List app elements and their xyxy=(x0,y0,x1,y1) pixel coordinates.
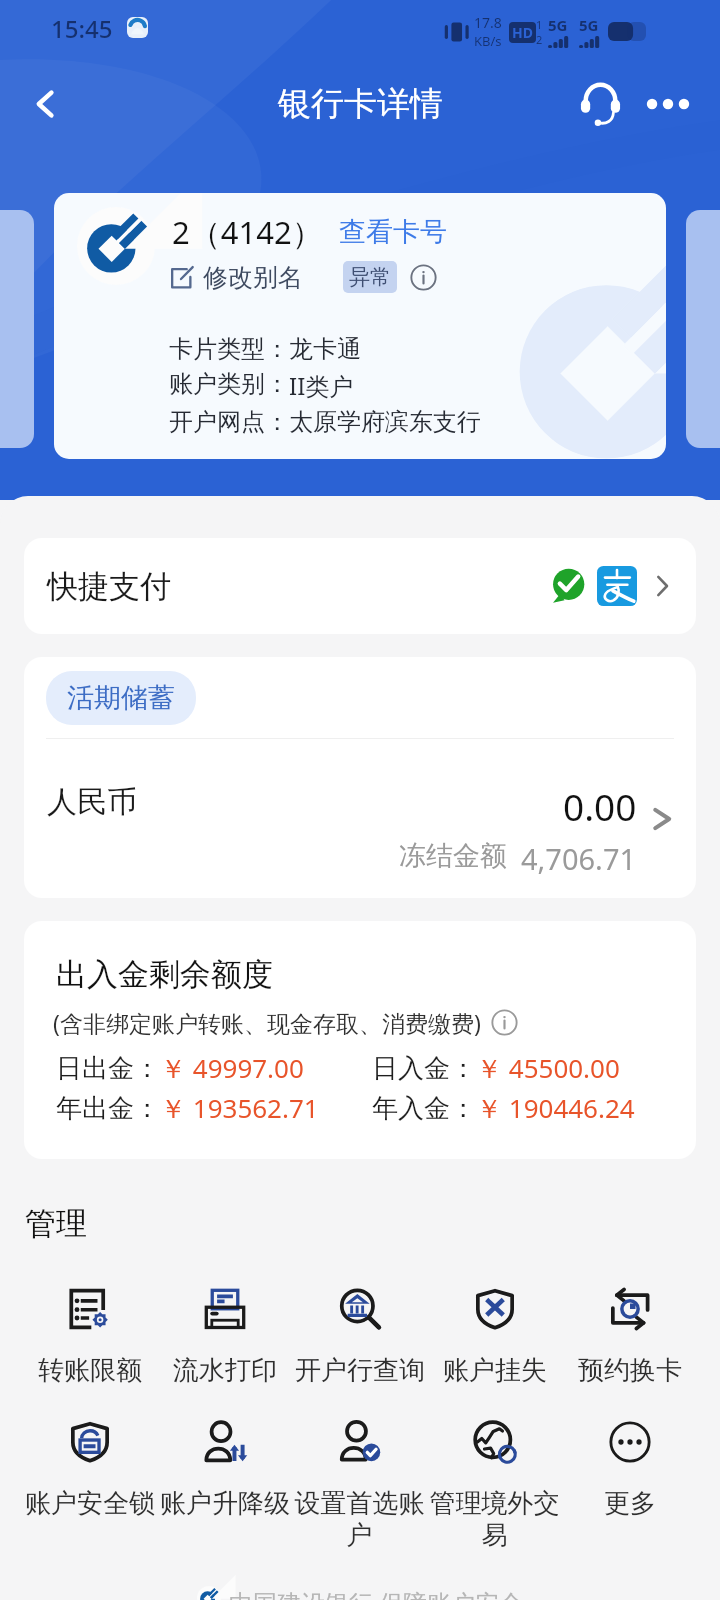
staticText: 账户升降级 xyxy=(160,1487,290,1520)
button[interactable]: 人民币 xyxy=(24,739,696,898)
staticText: 开户网点： xyxy=(169,407,289,437)
staticText: 管理境外交易 xyxy=(429,1487,560,1552)
staticText: ￥ 190446.24 xyxy=(476,1090,635,1126)
staticText: KB/s xyxy=(474,32,502,50)
staticText: 年出金： xyxy=(56,1092,160,1125)
staticText: 出入金剩余额度 xyxy=(56,955,273,994)
staticText: 活期储蓄 xyxy=(67,681,175,715)
button[interactable]: 预约换卡 xyxy=(562,1287,697,1387)
staticText: 转账限额 xyxy=(38,1354,142,1387)
button[interactable]: 管理境外交易 xyxy=(427,1420,562,1552)
staticText: 日入金： xyxy=(372,1052,476,1085)
staticText: 账户挂失 xyxy=(443,1354,547,1387)
staticText: 账户类别： xyxy=(169,369,289,399)
staticText: 1 xyxy=(536,17,543,32)
staticText: 更多 xyxy=(604,1487,656,1520)
staticText: 修改别名 xyxy=(203,262,303,293)
button[interactable]: 流水打印 xyxy=(157,1287,292,1387)
staticText: 银行卡详情 xyxy=(278,83,443,125)
button[interactable]: 账户挂失 xyxy=(427,1287,562,1387)
button[interactable]: 账户安全锁 xyxy=(23,1420,157,1520)
button[interactable]: 开户行查询 xyxy=(292,1287,427,1387)
button[interactable]: Customer service xyxy=(570,74,630,134)
staticText: II类户 xyxy=(289,369,354,402)
staticText: 0.00 xyxy=(563,781,637,831)
staticText: 流水打印 xyxy=(173,1354,277,1387)
button[interactable]: 快捷支付 xyxy=(24,538,696,634)
staticText: 日出金： xyxy=(56,1052,160,1085)
staticText: ￥ 193562.71 xyxy=(160,1090,319,1126)
staticText: 开户行查询 xyxy=(295,1354,425,1387)
button[interactable]: 查看卡号 xyxy=(339,215,447,249)
staticText: (含非绑定账户转账、现金存取、消费缴费) xyxy=(53,1007,481,1038)
staticText: 冻结金额 xyxy=(399,839,507,873)
button[interactable]: 更多 xyxy=(562,1420,697,1520)
staticText: 15:45 xyxy=(51,12,113,45)
button[interactable]: Back xyxy=(18,76,74,132)
staticText: 卡片类型： xyxy=(169,334,289,364)
button[interactable]: 修改别名 xyxy=(168,262,303,293)
staticText: 人民币 xyxy=(47,783,137,821)
staticText: 4,706.71 xyxy=(521,839,637,878)
button[interactable]: 账户升降级 xyxy=(157,1420,292,1520)
button[interactable]: More options xyxy=(640,76,696,132)
staticText: 5G xyxy=(548,15,568,35)
button[interactable]: 设置首选账户 xyxy=(292,1420,427,1552)
staticText: 预约换卡 xyxy=(578,1354,682,1387)
button[interactable]: 2（4142） xyxy=(54,193,666,459)
button[interactable]: 活期储蓄 xyxy=(67,681,175,715)
staticText: ￥ 49997.00 xyxy=(160,1050,304,1086)
staticText: 账户安全锁 xyxy=(25,1487,155,1520)
staticText: 管理 xyxy=(25,1204,87,1243)
staticText: ￥ 45500.00 xyxy=(476,1050,620,1086)
button[interactable]: Info xyxy=(407,261,439,293)
staticText: 查看卡号 xyxy=(339,215,447,249)
staticText: 快捷支付 xyxy=(47,567,171,606)
staticText: 中国建设银行 保障账户安全 xyxy=(229,1586,524,1600)
staticText: 2 xyxy=(536,32,543,47)
button[interactable]: 转账限额 xyxy=(23,1287,157,1387)
staticText: 17.8 xyxy=(474,13,502,32)
staticText: 设置首选账户 xyxy=(294,1487,425,1552)
staticText: 龙卡通 xyxy=(289,334,361,364)
staticText: HD xyxy=(512,23,533,42)
staticText: 2（4142） xyxy=(172,211,323,253)
staticText: 年入金： xyxy=(372,1092,476,1125)
staticText: 太原学府滨东支行 xyxy=(289,407,481,437)
staticText: 异常 xyxy=(349,264,391,290)
staticText: 5G xyxy=(579,15,599,35)
